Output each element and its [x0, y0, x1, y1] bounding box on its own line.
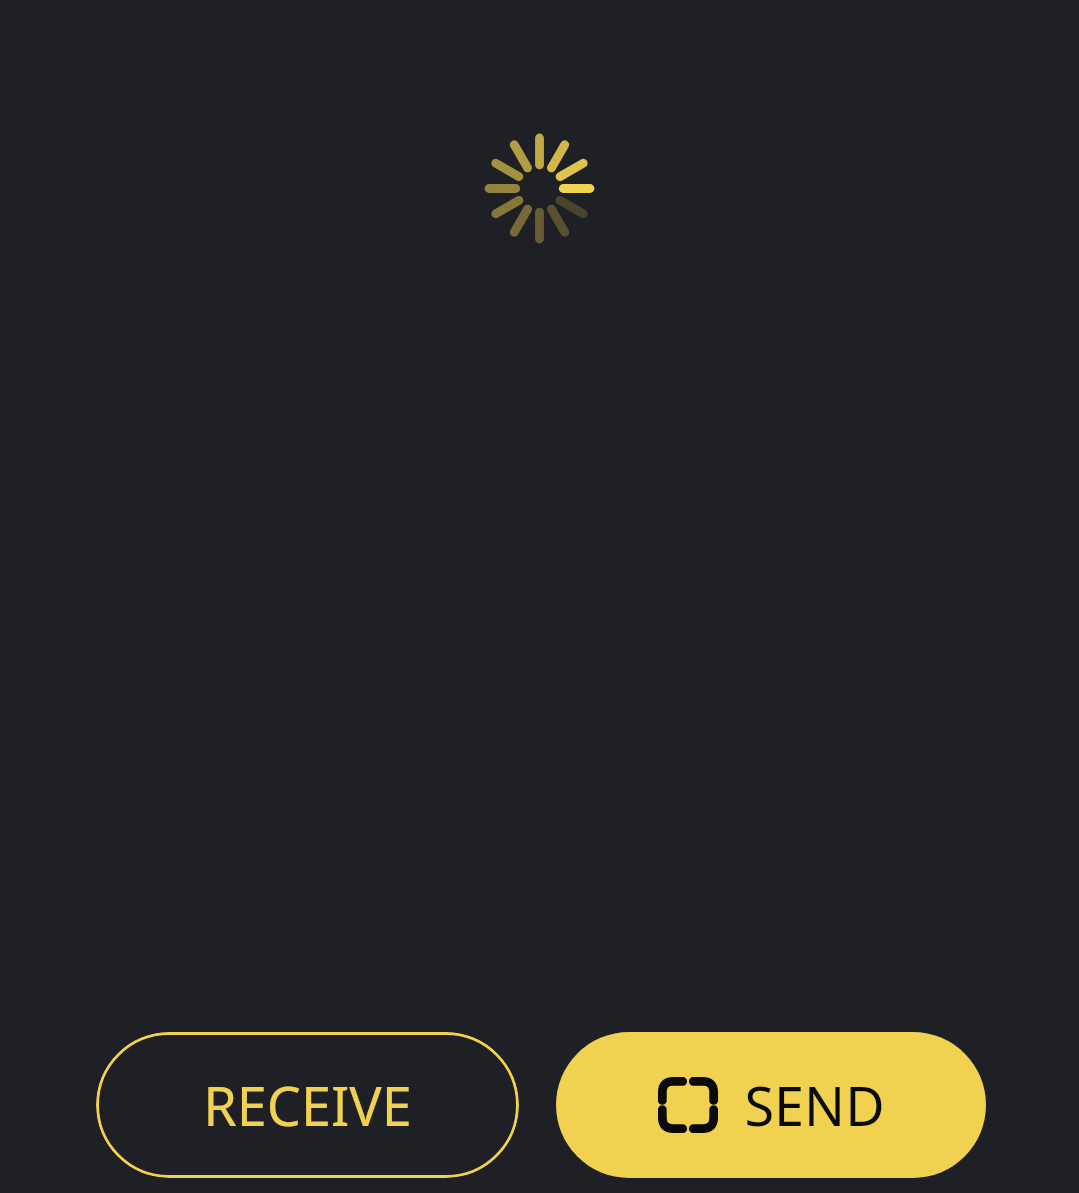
- other: Scan QR code: [658, 1077, 718, 1133]
- staticText: RECEIVE: [203, 1068, 412, 1142]
- button[interactable]: RECEIVE: [96, 1032, 519, 1178]
- button[interactable]: Scan QR code: [556, 1032, 986, 1178]
- staticText: SEND: [744, 1068, 885, 1142]
